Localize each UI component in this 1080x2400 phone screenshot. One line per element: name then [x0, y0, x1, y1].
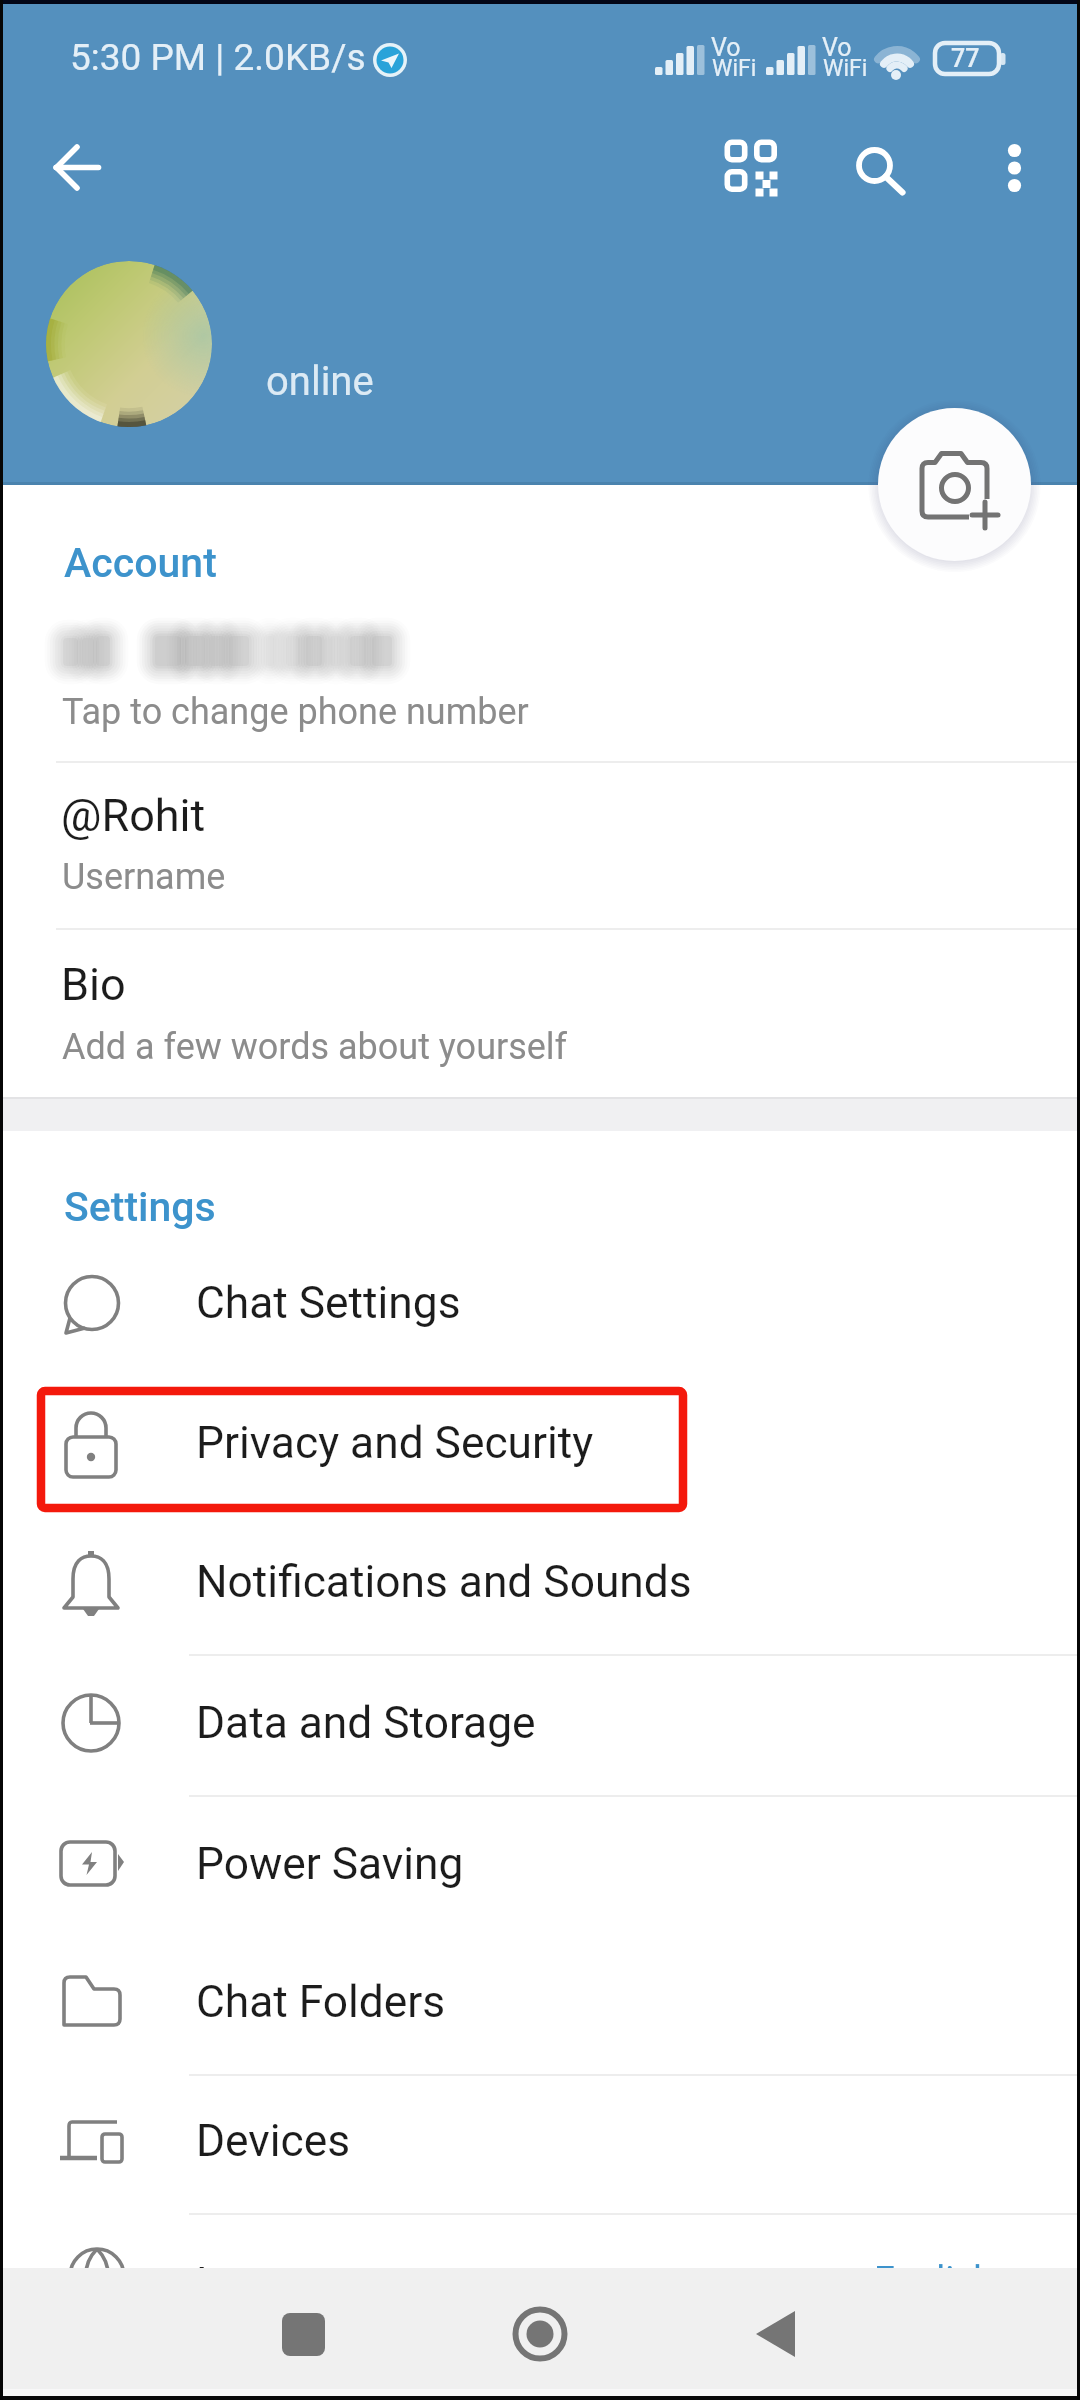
- staticText: online: [266, 358, 374, 405]
- button[interactable]: Chat Folders: [0, 1936, 1080, 2076]
- button[interactable]: [0, 600, 1080, 761]
- staticText: WiFi: [712, 55, 757, 82]
- staticText: Language: [196, 2258, 391, 2310]
- staticText: 5:30 PM | 2.0KB/s: [70, 36, 366, 79]
- staticText: Add a few words about yourself: [62, 1026, 568, 1068]
- button[interactable]: Home: [474, 2268, 606, 2400]
- staticText: Notifications and Sounds: [196, 1556, 692, 1608]
- button[interactable]: [0, 2215, 1080, 2268]
- button[interactable]: QR code: [700, 118, 800, 218]
- button[interactable]: Back: [709, 2268, 841, 2400]
- button[interactable]: Notifications and Sounds: [0, 1516, 1080, 1656]
- staticText: 77: [951, 44, 980, 73]
- staticText: Data and Storage: [196, 1697, 536, 1749]
- staticText: @Rohit: [61, 789, 206, 842]
- button[interactable]: Recent apps: [237, 2268, 369, 2400]
- staticText: Privacy and Security: [196, 1417, 594, 1469]
- button[interactable]: [0, 930, 1080, 1097]
- staticText: Tap to change phone number: [62, 691, 529, 733]
- staticText: Bio: [61, 958, 126, 1011]
- button[interactable]: Data and Storage: [0, 1657, 1080, 1797]
- button[interactable]: Devices: [0, 2075, 1080, 2215]
- button[interactable]: Power Saving: [0, 1798, 1080, 1938]
- staticText: Username: [62, 856, 226, 898]
- staticText: Vo: [822, 33, 852, 62]
- staticText: Account: [64, 539, 217, 587]
- button[interactable]: Chat Settings: [0, 1237, 1080, 1377]
- button[interactable]: Change profile photo: [878, 408, 1031, 561]
- button[interactable]: More options: [963, 118, 1063, 218]
- staticText: Chat Settings: [196, 1277, 461, 1329]
- button[interactable]: Profile photo: [46, 261, 212, 427]
- button[interactable]: Back: [25, 118, 125, 218]
- staticText: Vo: [711, 33, 741, 62]
- button[interactable]: Search: [828, 118, 928, 218]
- staticText: Settings: [64, 1183, 216, 1231]
- staticText: Chat Folders: [196, 1976, 446, 2028]
- staticText: English: [874, 2258, 994, 2301]
- button[interactable]: [0, 763, 1080, 928]
- button[interactable]: Privacy and Security: [0, 1377, 1080, 1517]
- staticText: WiFi: [823, 55, 868, 82]
- staticText: Power Saving: [196, 1838, 464, 1890]
- staticText: Devices: [196, 2115, 351, 2167]
